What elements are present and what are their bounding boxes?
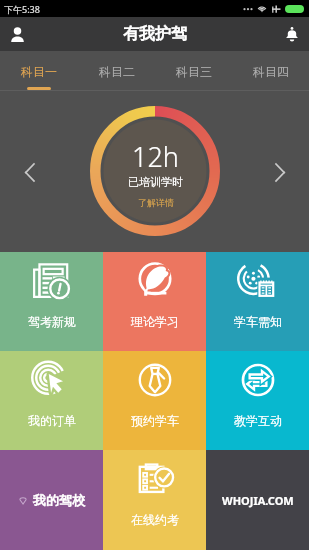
- staticText: 教学互动: [234, 413, 282, 428]
- staticText: 我的订单: [28, 413, 76, 428]
- button[interactable]: 在线约考: [103, 450, 206, 550]
- staticText: 科目一: [21, 64, 57, 79]
- button[interactable]: Notifications: [275, 17, 309, 51]
- staticText: 预约学车: [131, 413, 179, 428]
- staticText: 了解详情: [138, 197, 174, 208]
- staticText: 科目二: [99, 64, 135, 79]
- button[interactable]: 科目二: [78, 51, 155, 91]
- button[interactable]: 科目三: [155, 51, 232, 91]
- button[interactable]: Next subject: [265, 157, 295, 187]
- button[interactable]: 科目四: [232, 51, 309, 91]
- button[interactable]: Previous subject: [14, 157, 44, 187]
- staticText: WHOJIA.COM: [222, 493, 294, 508]
- staticText: 驾考新规: [28, 314, 76, 329]
- button[interactable]: Profile: [0, 17, 34, 51]
- button[interactable]: 学车需知: [206, 252, 309, 351]
- staticText: 已培训学时: [128, 175, 183, 189]
- staticText: 科目四: [253, 64, 289, 79]
- button[interactable]: 教学互动: [206, 351, 309, 450]
- staticText: 我的驾校: [33, 492, 85, 508]
- button[interactable]: WHOJIA.COM: [206, 450, 309, 550]
- button[interactable]: 理论学习: [103, 252, 206, 351]
- button[interactable]: 预约学车: [103, 351, 206, 450]
- staticText: 理论学习: [131, 314, 179, 329]
- button[interactable]: 我的订单: [0, 351, 103, 450]
- button[interactable]: 科目一: [0, 51, 78, 91]
- staticText: 在线约考: [131, 512, 179, 527]
- staticText: 学车需知: [234, 314, 282, 329]
- button[interactable]: 驾考新规: [0, 252, 103, 351]
- staticText: 12h: [132, 138, 179, 175]
- button[interactable]: 12h: [90, 106, 220, 236]
- button[interactable]: 我的驾校: [0, 450, 103, 550]
- staticText: 科目三: [176, 64, 212, 79]
- staticText: 下午5:38: [4, 3, 40, 15]
- staticText: 有我护驾: [123, 24, 187, 44]
